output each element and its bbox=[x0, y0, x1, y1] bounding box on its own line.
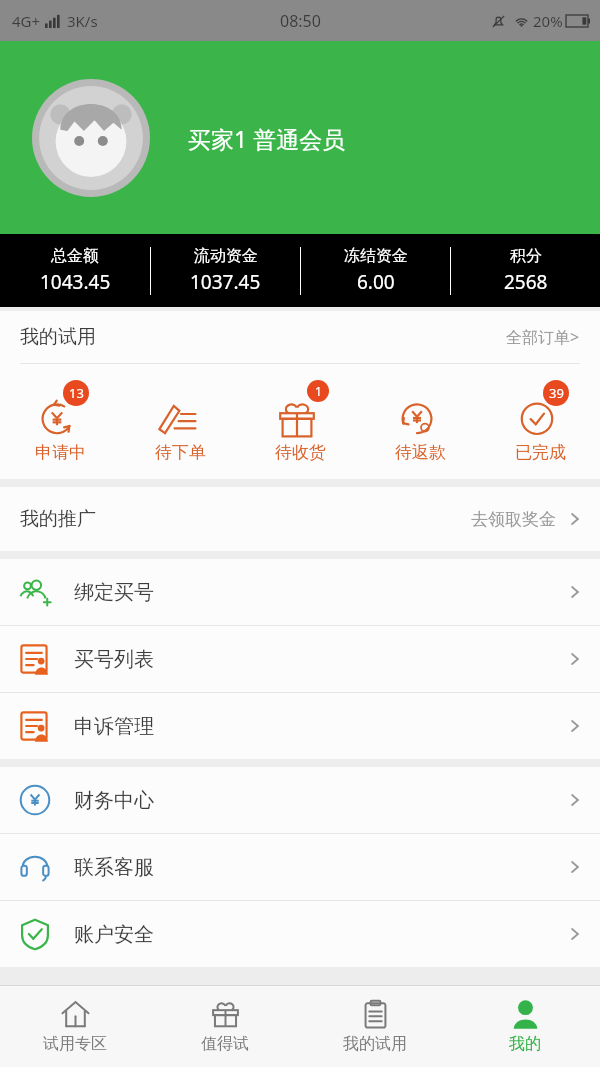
staticText: 全部订单> bbox=[506, 326, 580, 348]
staticText: 账户安全 bbox=[74, 922, 154, 947]
staticText: 1037.45 bbox=[190, 269, 261, 295]
button[interactable]: 申诉管理 bbox=[0, 693, 600, 759]
staticText: 申诉管理 bbox=[74, 714, 154, 739]
staticText: 待收货 bbox=[275, 442, 326, 463]
staticText: 流动资金 bbox=[194, 246, 258, 266]
staticText: 13 bbox=[69, 384, 84, 402]
staticText: 待下单 bbox=[155, 442, 206, 463]
staticText: 待返款 bbox=[395, 442, 446, 463]
staticText: 财务中心 bbox=[74, 788, 154, 813]
staticText: 6.00 bbox=[357, 269, 395, 295]
button[interactable]: 13 bbox=[0, 378, 120, 465]
button[interactable]: 待下单 bbox=[120, 378, 240, 465]
staticText: 我的推广 bbox=[20, 507, 96, 531]
button[interactable]: 试用专区 bbox=[0, 986, 150, 1067]
button[interactable]: 值得试 bbox=[150, 986, 300, 1067]
staticText: 试用专区 bbox=[43, 1034, 107, 1054]
button[interactable]: 绑定买号 bbox=[0, 559, 600, 625]
button[interactable]: 1 bbox=[240, 378, 360, 465]
button[interactable]: 我的试用 bbox=[0, 311, 600, 363]
staticText: 联系客服 bbox=[74, 855, 154, 880]
staticText: 买号列表 bbox=[74, 647, 154, 672]
staticText: 总金额 bbox=[51, 246, 99, 266]
staticText: 值得试 bbox=[201, 1034, 249, 1054]
staticText: 我的 bbox=[509, 1034, 541, 1054]
staticText: 2568 bbox=[504, 269, 548, 295]
button[interactable]: 财务中心 bbox=[0, 767, 600, 833]
staticText: 20% bbox=[533, 11, 563, 31]
staticText: 申请中 bbox=[35, 442, 86, 463]
staticText: 冻结资金 bbox=[344, 246, 408, 266]
button[interactable]: 账户安全 bbox=[0, 901, 600, 967]
staticText: 已完成 bbox=[515, 442, 566, 463]
staticText: 绑定买号 bbox=[74, 580, 154, 605]
staticText: 买家1 普通会员 bbox=[188, 123, 346, 154]
staticText: 1 bbox=[315, 383, 322, 399]
button[interactable]: 待返款 bbox=[360, 378, 480, 465]
staticText: 积分 bbox=[510, 246, 542, 266]
staticText: 4G+ bbox=[12, 11, 41, 31]
button[interactable]: 我的推广 bbox=[0, 487, 600, 551]
staticText: 08:50 bbox=[280, 10, 321, 32]
staticText: 去领取奖金 bbox=[471, 509, 556, 530]
button[interactable]: 联系客服 bbox=[0, 834, 600, 900]
staticText: 3K/s bbox=[67, 11, 98, 31]
button[interactable]: 我的 bbox=[450, 986, 600, 1067]
staticText: 我的试用 bbox=[20, 325, 96, 349]
staticText: 39 bbox=[549, 384, 564, 402]
button[interactable]: 我的试用 bbox=[300, 986, 450, 1067]
staticText: 1043.45 bbox=[40, 269, 111, 295]
button[interactable]: 买号列表 bbox=[0, 626, 600, 692]
staticText: 我的试用 bbox=[343, 1034, 407, 1054]
button[interactable]: 39 bbox=[480, 378, 600, 465]
